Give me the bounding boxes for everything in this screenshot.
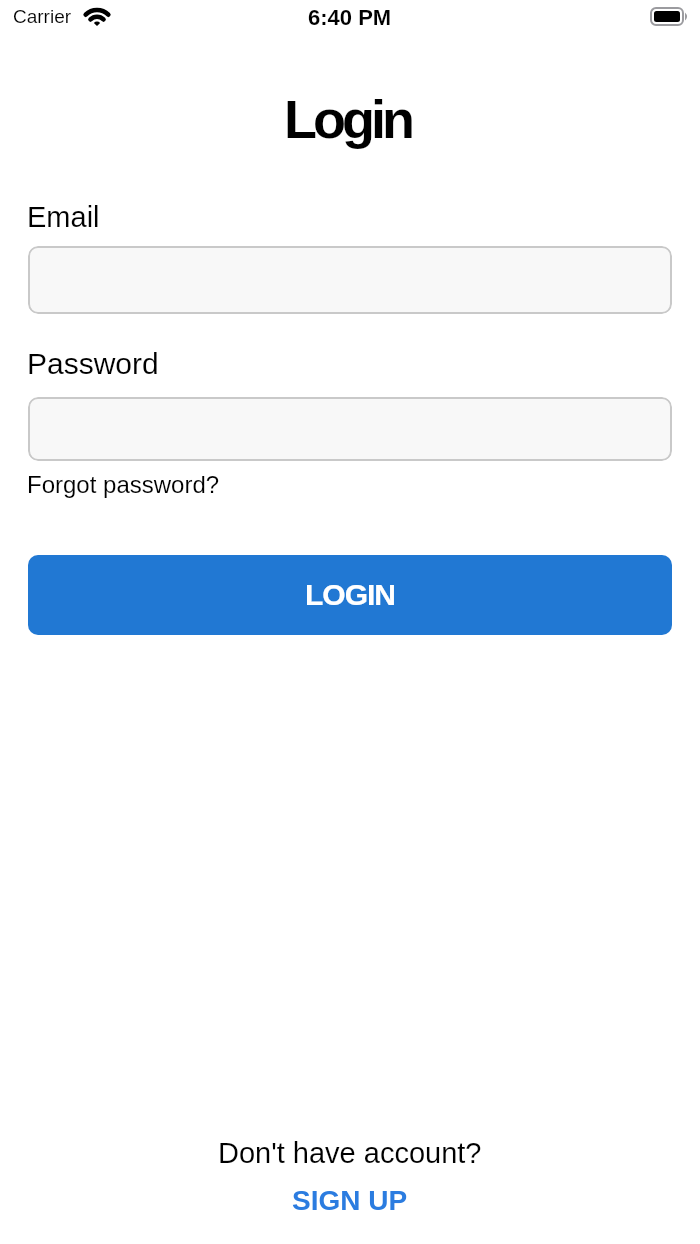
staticText: 6:40 PM	[308, 5, 392, 30]
staticText: Password	[27, 347, 159, 381]
button[interactable]: Forgot password?	[27, 471, 220, 498]
staticText: LOGIN	[305, 578, 395, 612]
staticText: Don't have account?	[218, 1137, 482, 1169]
staticText: Login	[284, 89, 411, 149]
staticText: Email	[27, 201, 100, 233]
button[interactable]: SIGN UP	[292, 1185, 408, 1216]
button[interactable]	[28, 397, 672, 461]
staticText: Carrier	[13, 6, 72, 27]
button[interactable]	[28, 246, 672, 314]
button[interactable]: LOGIN	[28, 555, 672, 635]
